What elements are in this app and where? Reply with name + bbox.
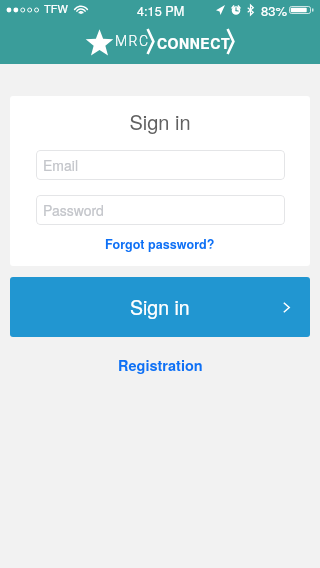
staticText: Sign in — [130, 293, 190, 321]
staticText: Registration — [118, 355, 203, 376]
staticText: TFW — [44, 0, 68, 16]
button[interactable]: Sign in — [10, 277, 310, 337]
staticText: MRC — [115, 33, 150, 49]
button[interactable]: Email — [36, 150, 285, 180]
button[interactable]: Forgot password? — [10, 233, 310, 255]
staticText: Password — [43, 200, 104, 220]
staticText: Email — [43, 155, 78, 175]
staticText: CONNECT — [157, 33, 230, 53]
staticText: 83% — [261, 1, 288, 20]
staticText: Forgot password? — [105, 235, 215, 253]
staticText: 4:15 PM — [137, 1, 185, 19]
button[interactable]: Registration — [0, 353, 320, 377]
button[interactable]: Password — [36, 195, 285, 225]
staticText: Sign in — [10, 107, 310, 136]
